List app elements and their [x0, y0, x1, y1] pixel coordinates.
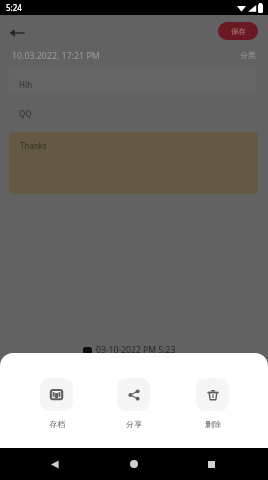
- staticText: 分享: [126, 419, 142, 429]
- staticText: 10.03.2022, 17:21 PM: [12, 50, 100, 62]
- staticText: Hlh: [19, 79, 33, 90]
- staticText: 删除: [205, 419, 221, 429]
- button[interactable]: Recent apps: [198, 451, 224, 477]
- button[interactable]: Home: [121, 451, 147, 477]
- staticText: 分类: [240, 50, 256, 60]
- staticText: QQ: [19, 108, 32, 119]
- staticText: 03-10-2022 PM 5:23: [96, 344, 176, 356]
- staticText: Thanks: [20, 140, 47, 151]
- button[interactable]: 分享: [117, 378, 150, 429]
- button[interactable]: Back: [5, 21, 29, 45]
- staticText: 5:24: [6, 2, 22, 13]
- staticText: 保存: [231, 27, 246, 36]
- button[interactable]: Back: [42, 451, 69, 477]
- button[interactable]: 保存: [218, 22, 258, 40]
- button[interactable]: 删除: [196, 378, 229, 429]
- button[interactable]: 存档: [40, 378, 73, 429]
- staticText: 存档: [49, 419, 65, 429]
